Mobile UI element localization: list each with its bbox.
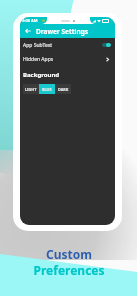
staticText: Drawer Settings [36,27,89,36]
staticText: App SubText [23,42,53,49]
button[interactable]: Back [23,26,33,36]
staticText: BLUE [42,87,52,92]
staticText: Background [23,71,60,79]
staticText: DARK [58,87,69,92]
staticText: Preferences [33,262,105,278]
button[interactable]: BLUE [39,84,55,94]
staticText: Custom [46,246,92,262]
button[interactable]: App SubText [20,38,115,52]
staticText: LIGHT [25,87,37,92]
button[interactable]: LIGHT [23,84,39,94]
button[interactable]: DARK [55,84,71,94]
button[interactable]: Hidden Apps [20,52,115,66]
staticText: Hidden Apps [23,56,54,63]
staticText: 9:08 AM [22,18,38,23]
